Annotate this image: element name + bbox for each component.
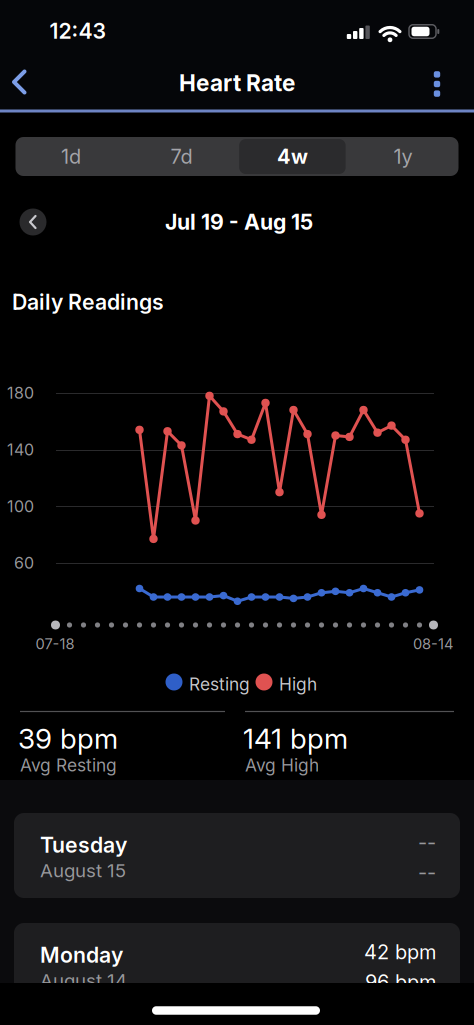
staticText: Tuesday — [40, 832, 127, 858]
button[interactable]: 1y — [348, 137, 458, 176]
staticText: 141 bpm — [243, 722, 348, 755]
staticText: 08-14 — [413, 635, 453, 653]
staticText: Monday — [40, 942, 123, 968]
staticText: 42 bpm — [364, 940, 436, 964]
staticText: August 14 — [40, 970, 127, 992]
staticText: 100 — [7, 497, 34, 516]
staticText: 1d — [61, 145, 81, 168]
staticText: August 15 — [40, 860, 126, 882]
staticText: -- — [418, 860, 436, 884]
staticText: 12:43 — [49, 18, 106, 44]
staticText: 7d — [171, 145, 193, 168]
button[interactable]: 7d — [126, 137, 237, 176]
staticText: High — [279, 674, 317, 694]
button[interactable]: Monday — [14, 923, 460, 1008]
button[interactable]: Previous period — [19, 208, 46, 235]
staticText: 180 — [7, 384, 34, 402]
staticText: 96 bpm — [365, 970, 436, 994]
staticText: Resting — [189, 674, 250, 694]
staticText: Daily Readings — [12, 289, 164, 315]
staticText: 07-18 — [35, 635, 74, 653]
staticText: 4w — [277, 145, 308, 168]
staticText: -- — [418, 830, 436, 854]
staticText: 140 — [7, 440, 34, 459]
staticText: Avg Resting — [20, 755, 117, 775]
button[interactable]: Tuesday — [14, 813, 460, 898]
staticText: 60 — [14, 554, 34, 572]
button[interactable]: More options — [415, 62, 459, 106]
button[interactable]: 1d — [15, 137, 126, 176]
staticText: Avg High — [245, 755, 319, 775]
staticText: 1y — [394, 145, 413, 168]
staticText: 39 bpm — [18, 722, 118, 755]
staticText: Jul 19 - Aug 15 — [165, 209, 313, 235]
button[interactable]: Back — [0, 60, 44, 104]
staticText: Heart Rate — [179, 70, 295, 96]
button[interactable]: 4w — [237, 137, 348, 176]
